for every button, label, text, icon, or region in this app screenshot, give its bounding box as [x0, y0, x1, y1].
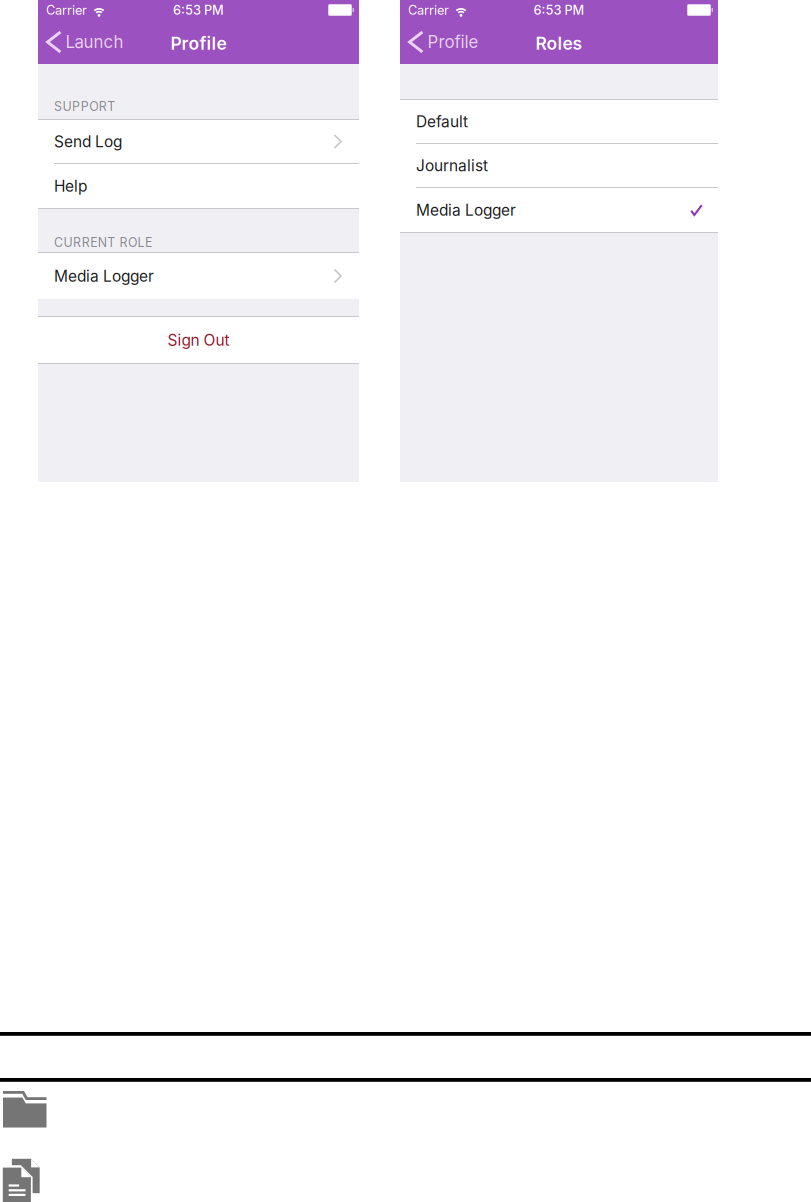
- button[interactable]: Media Logger: [400, 188, 718, 232]
- staticText: SUPPORT: [54, 99, 115, 114]
- staticText: CURRENT ROLE: [54, 235, 152, 250]
- staticText: Help: [54, 177, 87, 195]
- button[interactable]: Launch: [38, 20, 129, 64]
- button[interactable]: Journalist: [400, 144, 718, 187]
- staticText: Roles: [535, 33, 582, 54]
- button[interactable]: Media Logger: [38, 253, 359, 299]
- staticText: Media Logger: [416, 201, 516, 219]
- staticText: Carrier: [46, 2, 87, 18]
- button[interactable]: Sign Out: [38, 317, 359, 363]
- staticText: Media Logger: [54, 267, 154, 285]
- staticText: Journalist: [416, 156, 488, 175]
- staticText: 6:53 PM: [533, 2, 584, 18]
- button[interactable]: Send Log: [38, 120, 359, 163]
- staticText: Send Log: [54, 132, 122, 151]
- staticText: Launch: [65, 32, 123, 52]
- staticText: Profile: [170, 33, 226, 54]
- button[interactable]: Default: [400, 100, 718, 143]
- button[interactable]: Profile: [400, 20, 484, 64]
- staticText: Profile: [427, 32, 478, 52]
- button[interactable]: Help: [38, 164, 359, 208]
- staticText: 6:53 PM: [173, 2, 224, 18]
- staticText: Default: [416, 112, 468, 131]
- staticText: Sign Out: [167, 331, 229, 349]
- staticText: Carrier: [408, 2, 449, 18]
